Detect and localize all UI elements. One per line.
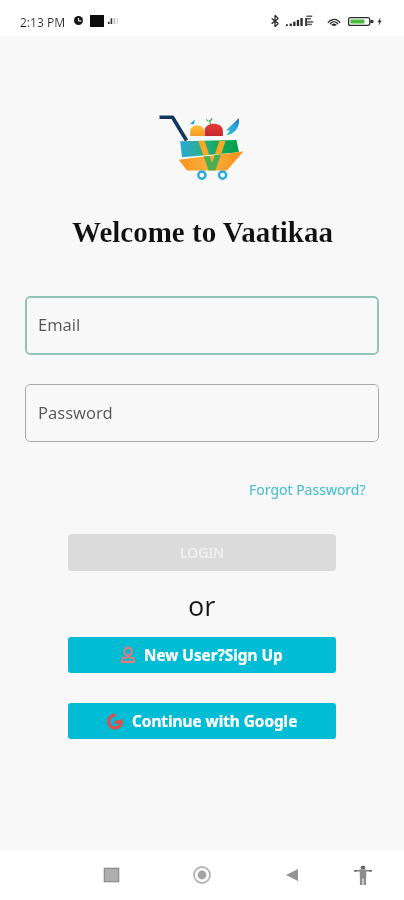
staticText: Email xyxy=(38,313,81,335)
staticText: New User?Sign Up xyxy=(144,645,283,666)
staticText: Welcome to Vaatikaa xyxy=(72,216,333,248)
button[interactable]: Back xyxy=(275,858,309,892)
button[interactable]: Password xyxy=(25,384,379,442)
staticText: Continue with Google xyxy=(132,711,298,732)
staticText: 2:13 PM xyxy=(20,14,66,30)
button[interactable]: Recents xyxy=(94,858,128,892)
button[interactable]: Continue with Google xyxy=(68,703,336,739)
staticText: or xyxy=(188,587,216,624)
button[interactable]: Home xyxy=(185,858,219,892)
button[interactable]: Accessibility xyxy=(346,858,380,892)
button[interactable]: Forgot Password? xyxy=(249,480,366,499)
button[interactable]: Email xyxy=(25,296,379,355)
staticText: LOGIN xyxy=(180,543,225,562)
button[interactable]: New User?Sign Up xyxy=(68,637,336,673)
staticText: Password xyxy=(38,401,113,423)
